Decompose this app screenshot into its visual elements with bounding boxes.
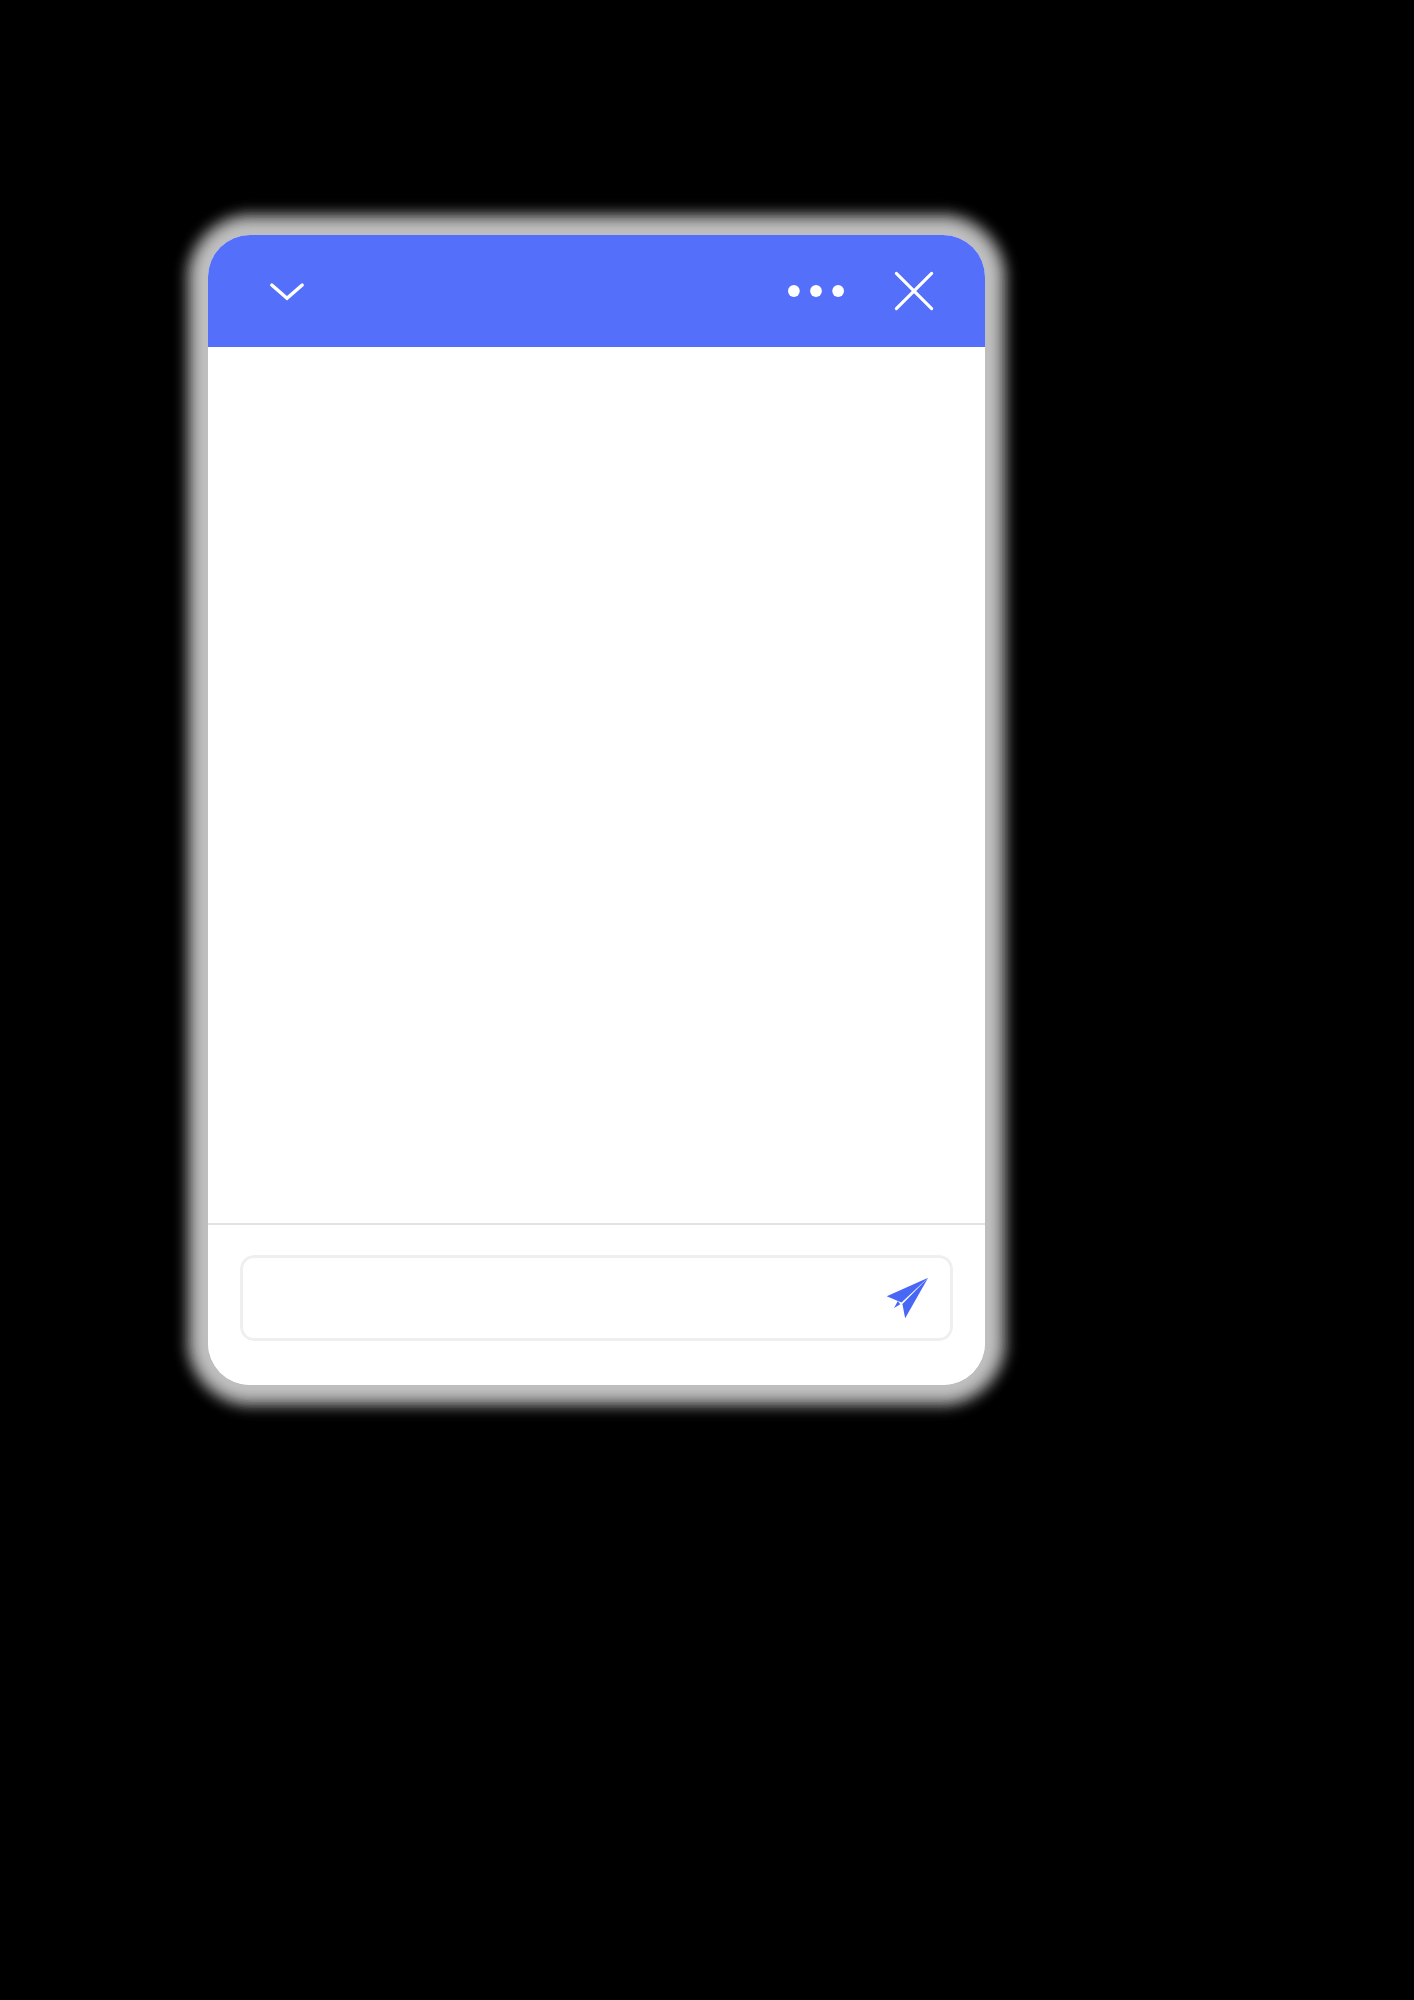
button[interactable]: Close	[883, 260, 945, 322]
button[interactable]: Collapse	[256, 260, 318, 322]
button[interactable]: Message input	[240, 1255, 953, 1341]
button[interactable]: More options	[773, 260, 859, 322]
button[interactable]: Send	[875, 1266, 939, 1330]
